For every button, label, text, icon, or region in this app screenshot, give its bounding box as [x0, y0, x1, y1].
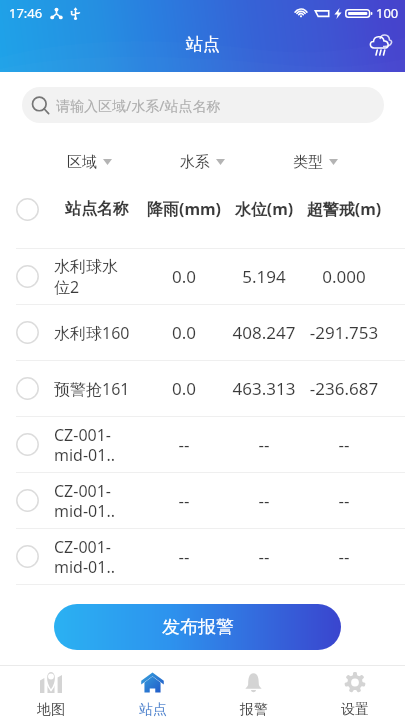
- button[interactable]: Weather: [368, 31, 394, 57]
- button[interactable]: 设置: [304, 671, 405, 720]
- staticText: --: [304, 489, 384, 512]
- button[interactable]: 发布报警: [54, 604, 341, 650]
- staticText: 站点名称: [65, 199, 144, 219]
- staticText: 408.247: [224, 321, 304, 344]
- staticText: 地图: [37, 701, 65, 719]
- staticText: 报警: [240, 701, 268, 719]
- staticText: 站点: [139, 701, 167, 719]
- staticText: 0.0: [144, 377, 224, 400]
- button[interactable]: 水系: [146, 140, 259, 184]
- staticText: 0.0: [144, 265, 224, 288]
- staticText: -291.753: [304, 321, 384, 344]
- staticText: 水利球160: [54, 322, 132, 344]
- staticText: 0.0: [144, 321, 224, 344]
- button[interactable]: 预警抢161: [0, 361, 405, 416]
- staticText: --: [224, 489, 304, 512]
- staticText: 区域: [67, 153, 97, 172]
- button[interactable]: CZ-001-mid-01..: [0, 529, 405, 584]
- staticText: 水系: [180, 153, 210, 172]
- staticText: --: [304, 545, 384, 568]
- staticText: 100: [376, 4, 399, 22]
- staticText: CZ-001-mid-01..: [54, 536, 132, 577]
- staticText: CZ-001-mid-01..: [54, 480, 132, 521]
- staticText: --: [144, 433, 224, 456]
- staticText: 水利球水位2: [54, 257, 132, 297]
- staticText: 发布报警: [162, 616, 234, 639]
- staticText: 0.000: [304, 265, 384, 288]
- staticText: 类型: [293, 153, 323, 172]
- staticText: 预警抢161: [54, 378, 132, 400]
- staticText: 水位(m): [224, 198, 304, 220]
- staticText: 463.313: [224, 377, 304, 400]
- staticText: --: [304, 433, 384, 456]
- staticText: 降雨(mm): [144, 198, 224, 220]
- staticText: --: [144, 489, 224, 512]
- staticText: -236.687: [304, 377, 384, 400]
- staticText: --: [144, 545, 224, 568]
- staticText: 设置: [341, 701, 369, 719]
- button[interactable]: 区域: [33, 140, 146, 184]
- staticText: 5.194: [224, 265, 304, 288]
- button[interactable]: CZ-001-mid-01..: [0, 473, 405, 528]
- button[interactable]: CZ-001-mid-01..: [0, 417, 405, 472]
- button[interactable]: 请输入区域/水系/站点名称: [22, 87, 384, 123]
- staticText: 17:46: [9, 4, 43, 22]
- staticText: --: [224, 433, 304, 456]
- staticText: 请输入区域/水系/站点名称: [56, 96, 221, 115]
- button[interactable]: 水利球水位2: [0, 249, 405, 304]
- button[interactable]: 类型: [259, 140, 372, 184]
- button[interactable]: 报警: [203, 671, 304, 720]
- staticText: CZ-001-mid-01..: [54, 424, 132, 465]
- staticText: --: [224, 545, 304, 568]
- button[interactable]: 水利球160: [0, 305, 405, 360]
- staticText: 超警戒(m): [304, 198, 384, 220]
- button[interactable]: 地图: [0, 671, 102, 720]
- staticText: 站点: [186, 34, 220, 55]
- button[interactable]: 站点: [102, 671, 203, 720]
